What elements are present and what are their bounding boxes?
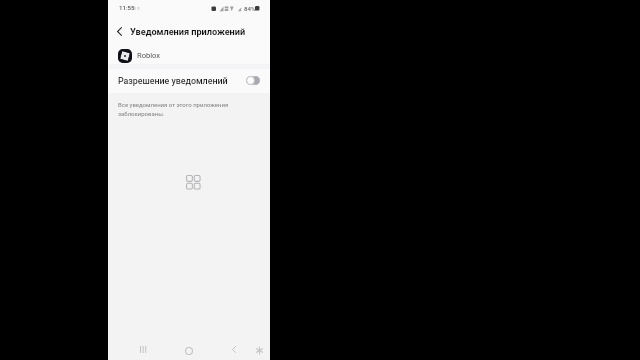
staticText: Уведомления приложений bbox=[130, 26, 246, 37]
button[interactable]: Recent apps bbox=[131, 339, 155, 360]
staticText: 11:55 bbox=[119, 4, 135, 11]
button[interactable]: Home bbox=[179, 340, 199, 360]
button[interactable]: Roblox bbox=[108, 43, 270, 69]
button[interactable]: Back bbox=[108, 20, 270, 42]
staticText: Все уведомления от этого приложения забл… bbox=[118, 101, 229, 118]
button[interactable]: Bixby bbox=[250, 340, 269, 360]
staticText: Разрешение уведомлений bbox=[118, 76, 228, 86]
button[interactable]: Разрешение уведомлений bbox=[108, 69, 270, 92]
staticText: Roblox bbox=[137, 51, 161, 60]
staticText: 84% bbox=[244, 5, 256, 12]
button[interactable]: Allow notifications toggle bbox=[246, 76, 260, 85]
button[interactable]: Back bbox=[224, 339, 244, 360]
button[interactable]: Back bbox=[108, 20, 130, 42]
